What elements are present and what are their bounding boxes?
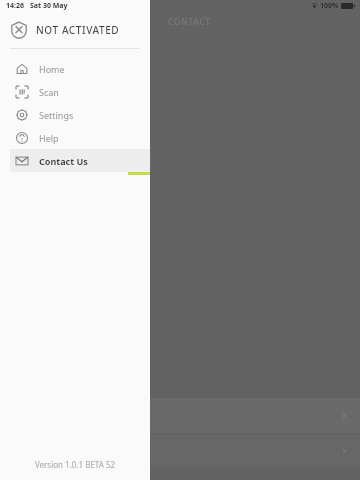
button[interactable]: Open: [0, 398, 360, 433]
staticText: Version 1.0.1 BETA 52: [0, 459, 150, 470]
other: Not activated: [10, 21, 28, 39]
button[interactable]: Settings: [10, 103, 150, 126]
other: Open: [340, 447, 348, 455]
staticText: Home: [39, 63, 65, 75]
button[interactable]: Help: [10, 126, 150, 149]
staticText: CONTACT: [168, 16, 211, 27]
button[interactable]: Not activated: [0, 11, 150, 48]
staticText: Help: [39, 132, 59, 144]
button[interactable]: Open: [0, 435, 360, 467]
button[interactable]: Scan: [10, 80, 150, 103]
staticText: Sat 30 May: [30, 1, 68, 11]
button[interactable]: Home: [10, 57, 150, 80]
staticText: Contact Us: [39, 155, 88, 167]
staticText: 14:26: [6, 1, 24, 11]
button[interactable]: Contact Us: [10, 149, 150, 172]
staticText: Scan: [39, 86, 59, 98]
other: Open: [340, 412, 348, 420]
staticText: Settings: [39, 109, 74, 121]
staticText: 100%: [320, 1, 339, 11]
staticText: NOT ACTIVATED: [36, 23, 120, 37]
